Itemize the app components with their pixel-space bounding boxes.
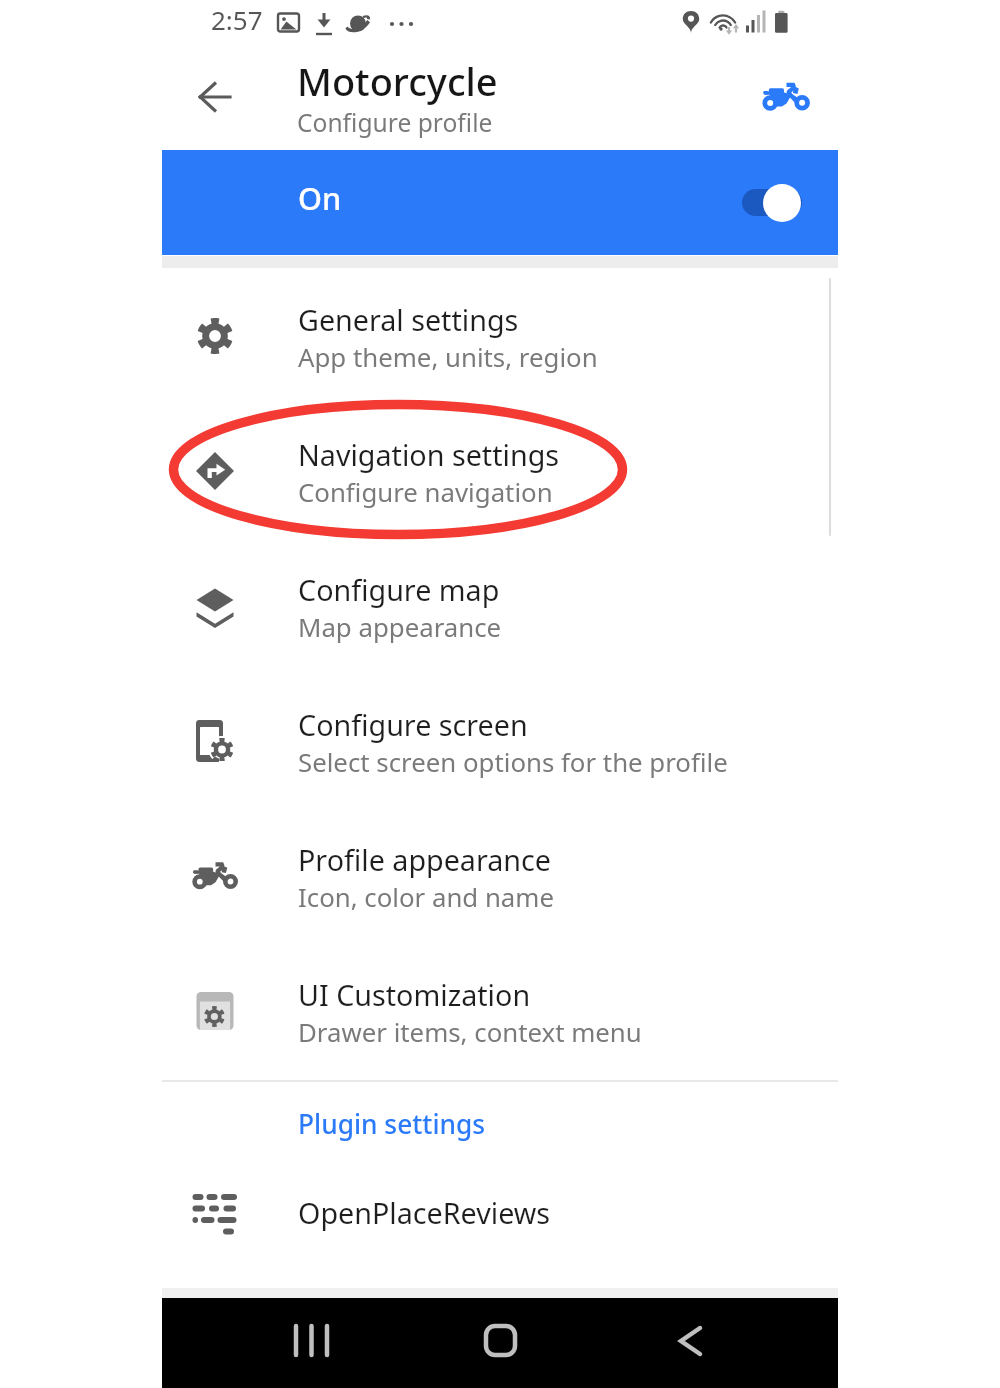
staticText: 2:57 — [211, 2, 263, 37]
staticText: On — [298, 177, 342, 219]
button[interactable]: Home — [476, 1316, 526, 1366]
button[interactable]: General settings — [162, 269, 838, 404]
staticText: UI Customization — [298, 975, 531, 1014]
staticText: Configure navigation — [298, 474, 553, 509]
button[interactable]: Motorcycle profile — [760, 79, 812, 115]
button[interactable]: UI Customization — [162, 944, 838, 1079]
staticText: Plugin settings — [298, 1106, 486, 1142]
staticText: Profile appearance — [298, 840, 551, 879]
staticText: Icon, color and name — [298, 879, 554, 914]
button[interactable]: On — [162, 150, 838, 255]
staticText: App theme, units, region — [298, 339, 598, 374]
staticText: Configure screen — [298, 705, 528, 744]
staticText: Configure profile — [297, 106, 493, 140]
staticText: Drawer items, context menu — [298, 1014, 642, 1049]
button[interactable]: Profile appearance — [162, 809, 838, 944]
staticText: OpenPlaceReviews — [298, 1193, 551, 1232]
button[interactable]: Back — [670, 1316, 720, 1366]
button[interactable]: Configure screen — [162, 674, 838, 809]
button[interactable]: OpenPlaceReviews — [162, 1157, 838, 1277]
staticText: Select screen options for the profile — [298, 744, 728, 779]
button[interactable]: Recent apps — [286, 1316, 338, 1366]
button[interactable]: Configure map — [162, 539, 838, 674]
staticText: General settings — [298, 300, 519, 339]
staticText: Map appearance — [298, 609, 502, 644]
staticText: Navigation settings — [298, 435, 560, 474]
staticText: Configure map — [298, 570, 500, 609]
staticText: Motorcycle — [297, 55, 498, 107]
button[interactable]: Plugin settings — [162, 1088, 838, 1160]
button[interactable]: Navigation settings — [162, 404, 838, 539]
button[interactable]: Back — [199, 83, 233, 115]
